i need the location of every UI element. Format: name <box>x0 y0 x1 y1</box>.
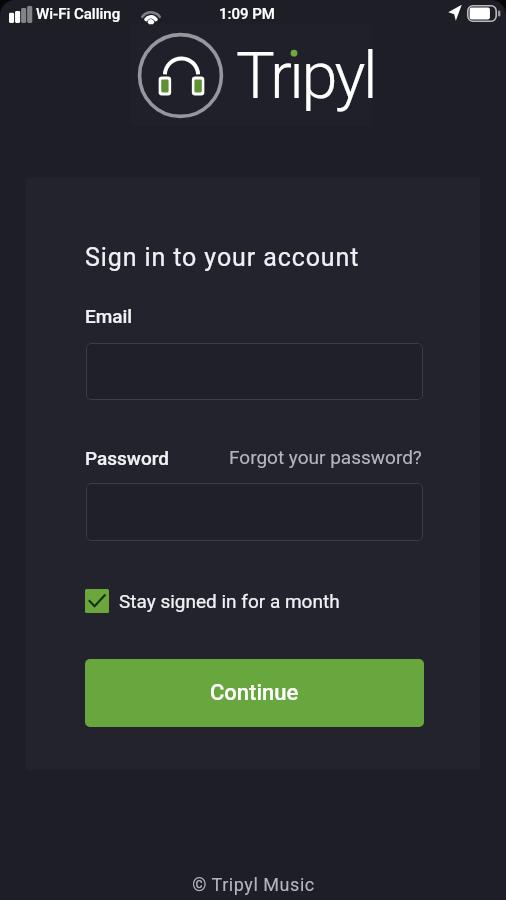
other: Wi-Fi <box>141 6 161 23</box>
staticText: 1:09 PM <box>219 5 275 23</box>
staticText: Forgot your password? <box>229 446 422 468</box>
staticText: Password <box>85 447 169 469</box>
button[interactable] <box>86 483 423 541</box>
button[interactable]: Stay signed in for a month <box>85 587 340 615</box>
staticText: Wi-Fi Calling <box>36 5 121 23</box>
other: Cellular signal <box>9 6 32 23</box>
staticText: Stay signed in for a month <box>119 590 340 612</box>
other: Battery <box>467 5 500 23</box>
button[interactable]: Continue <box>85 659 424 727</box>
other: Location <box>448 4 462 21</box>
staticText: Tripyl <box>236 38 376 114</box>
staticText: Sign in to your account <box>85 243 360 272</box>
staticText: Continue <box>210 680 299 706</box>
button[interactable] <box>86 343 423 400</box>
staticText: Email <box>85 305 133 327</box>
staticText: © Tripyl Music <box>192 874 315 895</box>
other: Tripyl logo <box>136 31 225 120</box>
button[interactable]: Forgot your password? <box>200 443 422 470</box>
